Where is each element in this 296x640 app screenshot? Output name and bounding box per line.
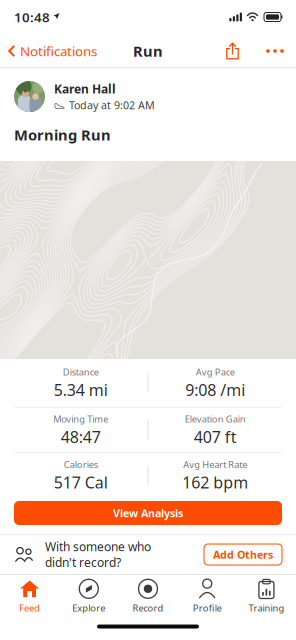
- staticText: Profile: [193, 602, 222, 614]
- button[interactable]: Karen Hall: [14, 81, 282, 112]
- staticText: 517 Cal: [54, 472, 108, 493]
- staticText: View Analysis: [113, 506, 183, 520]
- button[interactable]: Explore: [59, 570, 118, 616]
- staticText: Record: [132, 602, 163, 614]
- button[interactable]: Add Others: [204, 544, 282, 565]
- button[interactable]: Record: [118, 570, 178, 616]
- staticText: With someone who didn't record?: [45, 539, 151, 570]
- staticText: Elevation Gain: [185, 413, 246, 425]
- staticText: Today at 9:02 AM: [69, 98, 155, 112]
- staticText: Morning Run: [14, 125, 111, 145]
- staticText: 5.34 mi: [54, 379, 108, 400]
- staticText: Avg Heart Rate: [183, 458, 247, 471]
- staticText: 162 bpm: [182, 472, 248, 493]
- staticText: Avg Pace: [196, 366, 235, 378]
- button[interactable]: Feed: [0, 570, 59, 616]
- staticText: Add Others: [213, 547, 273, 562]
- button[interactable]: Notifications: [8, 36, 97, 66]
- staticText: 9:08 /mi: [185, 379, 245, 400]
- staticText: Calories: [64, 458, 98, 471]
- button[interactable]: Share: [221, 42, 244, 60]
- staticText: Explore: [72, 602, 105, 614]
- staticText: 407 ft: [194, 426, 237, 447]
- staticText: Moving Time: [53, 413, 108, 425]
- staticText: 48:47: [61, 426, 101, 447]
- staticText: Notifications: [20, 42, 97, 60]
- button[interactable]: View Analysis: [14, 501, 282, 525]
- staticText: Training: [248, 602, 284, 614]
- staticText: Karen Hall: [54, 81, 116, 97]
- staticText: Feed: [19, 602, 40, 614]
- staticText: Run: [133, 41, 163, 61]
- button[interactable]: More options: [262, 40, 288, 62]
- button[interactable]: Profile: [178, 570, 237, 616]
- staticText: Distance: [63, 366, 99, 378]
- staticText: 10:48: [14, 8, 50, 26]
- button[interactable]: Training: [237, 570, 296, 616]
